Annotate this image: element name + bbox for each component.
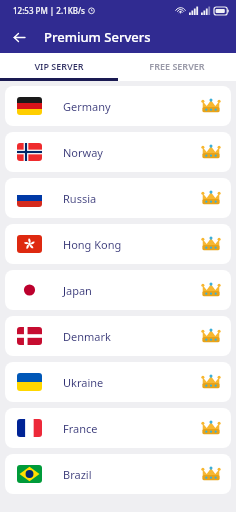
- button[interactable]: Premium: [199, 186, 223, 210]
- button[interactable]: Premium: [199, 232, 223, 256]
- staticText: Premium Servers: [44, 28, 151, 46]
- button[interactable]: France: [5, 408, 231, 448]
- button[interactable]: Premium: [199, 94, 223, 118]
- button[interactable]: Japan: [5, 270, 231, 310]
- staticText: Germany: [63, 99, 199, 114]
- staticText: Norway: [63, 145, 199, 160]
- button[interactable]: Premium: [199, 324, 223, 348]
- button[interactable]: Premium: [199, 140, 223, 164]
- staticText: Japan: [63, 283, 199, 298]
- staticText: Hong Kong: [63, 237, 199, 252]
- button[interactable]: Germany: [5, 86, 231, 126]
- staticText: Ukraine: [63, 375, 199, 390]
- button[interactable]: Premium: [199, 416, 223, 440]
- button[interactable]: Back: [6, 24, 32, 50]
- button[interactable]: Brazil: [5, 454, 231, 494]
- staticText: Brazil: [63, 467, 199, 482]
- button[interactable]: Premium: [199, 462, 223, 486]
- button[interactable]: Norway: [5, 132, 231, 172]
- staticText: France: [63, 421, 199, 436]
- button[interactable]: Denmark: [5, 316, 231, 356]
- button[interactable]: Ukraine: [5, 362, 231, 402]
- button[interactable]: Premium: [199, 278, 223, 302]
- staticText: Denmark: [63, 329, 199, 344]
- staticText: Russia: [63, 191, 199, 206]
- button[interactable]: Russia: [5, 178, 231, 218]
- button[interactable]: VIP SERVER: [0, 53, 118, 78]
- button[interactable]: FREE SERVER: [118, 53, 236, 78]
- staticText: VIP SERVER: [34, 60, 84, 72]
- staticText: FREE SERVER: [149, 60, 205, 72]
- staticText: 12:53 PM | 2.1KB/s: [13, 5, 85, 16]
- button[interactable]: Premium: [199, 370, 223, 394]
- button[interactable]: Hong Kong: [5, 224, 231, 264]
